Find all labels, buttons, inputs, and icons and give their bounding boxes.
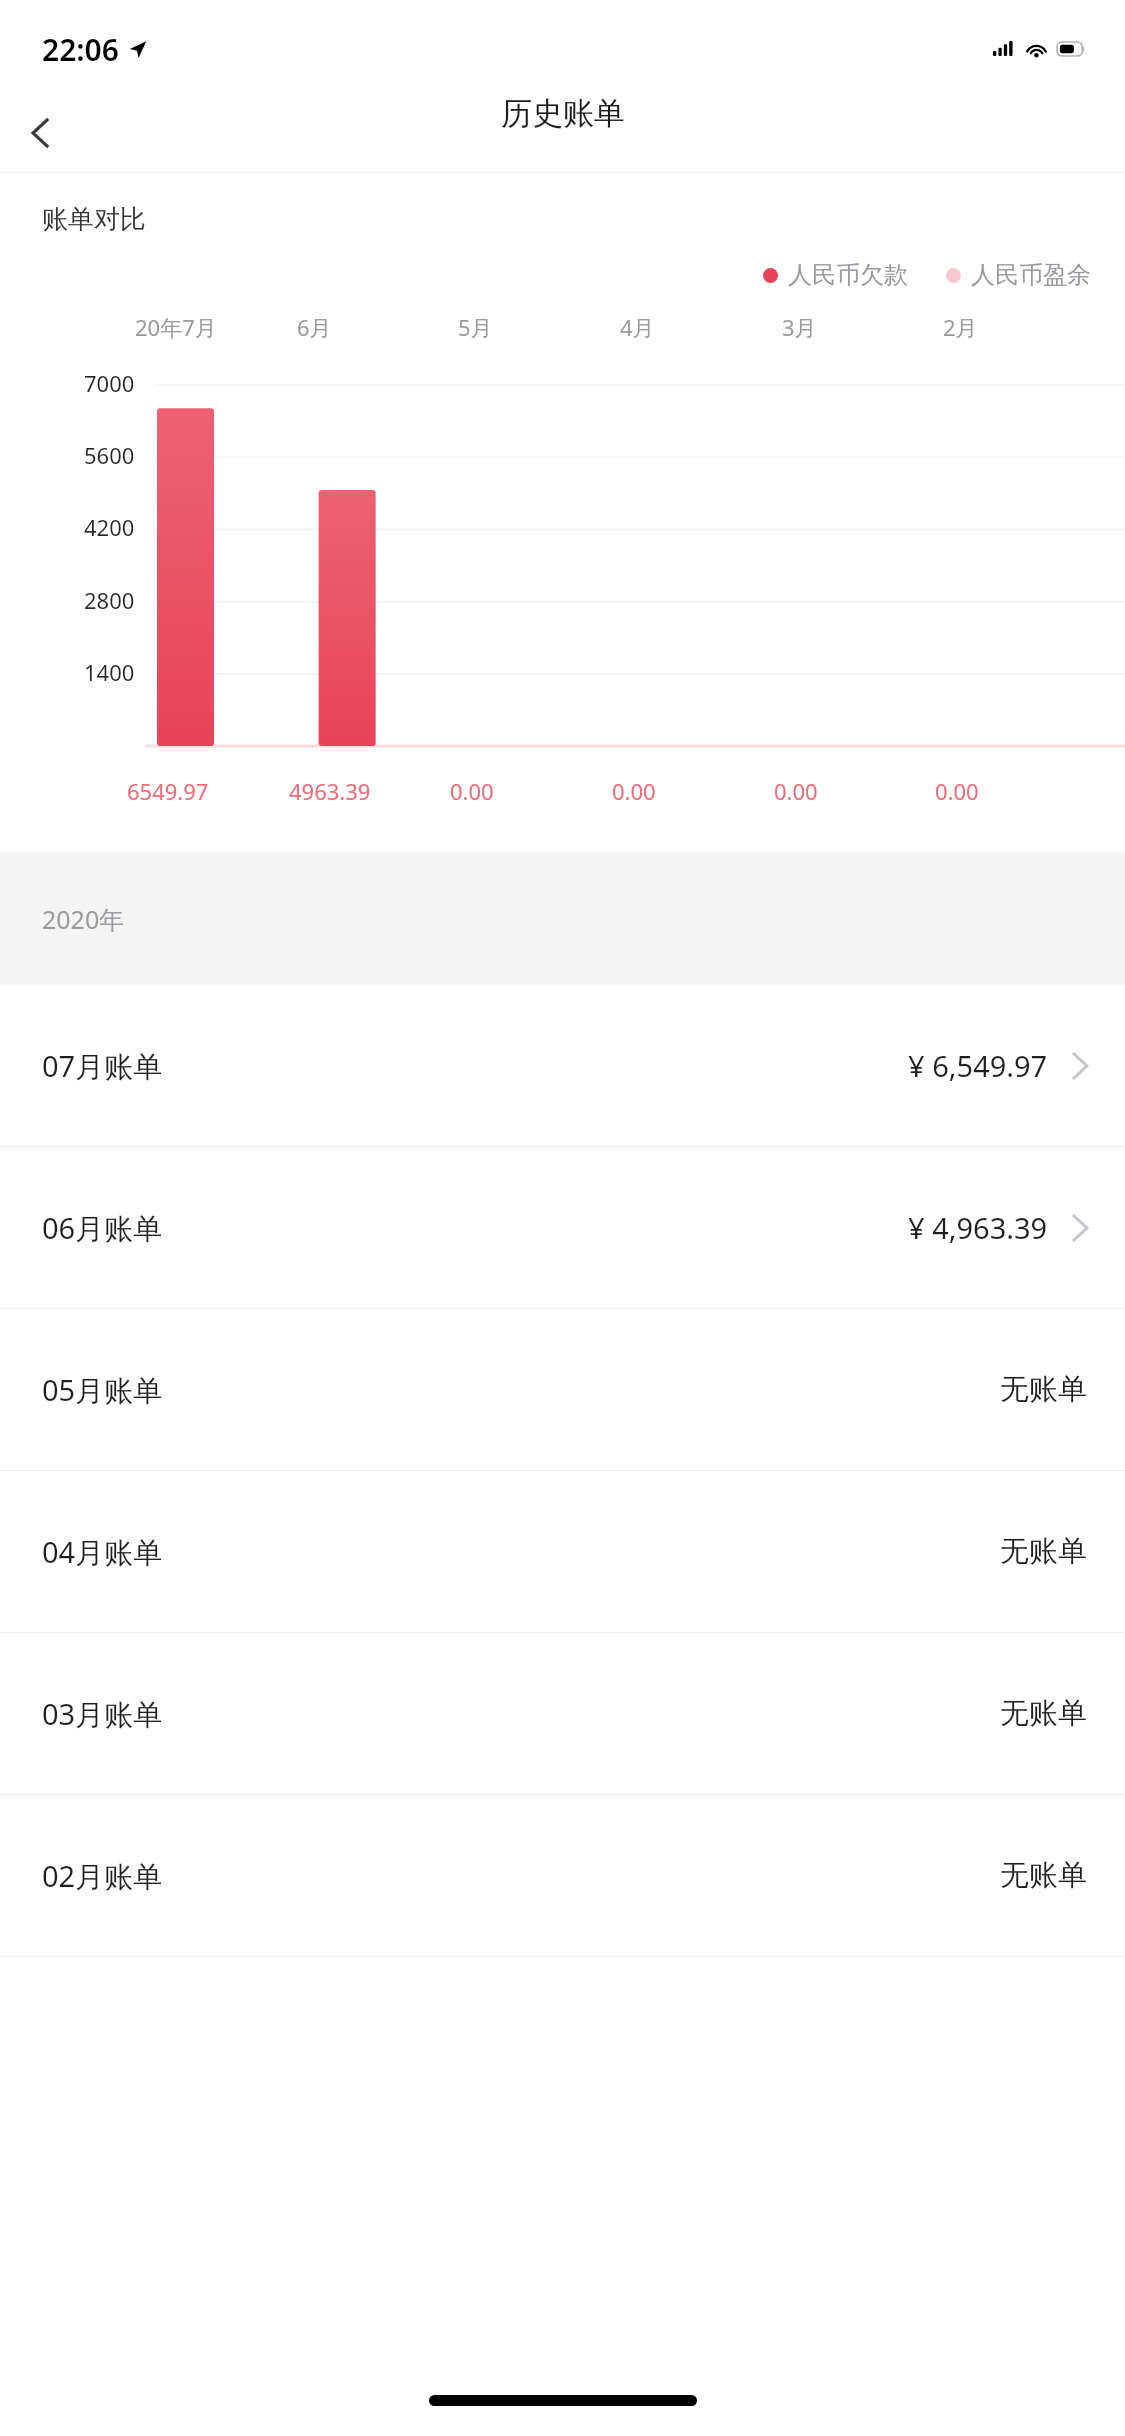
staticText: 无账单 [1000, 1533, 1087, 1570]
staticText: 04月账单 [42, 1532, 163, 1572]
staticText: 0.00 [935, 776, 979, 806]
staticText: ¥ 6,549.97 [908, 1046, 1048, 1085]
staticText: 0.00 [612, 776, 656, 806]
staticText: 05月账单 [42, 1370, 163, 1410]
button[interactable]: 05月账单 [0, 1309, 1125, 1470]
staticText: 7000 [84, 368, 135, 398]
button[interactable]: 02月账单 [0, 1795, 1125, 1956]
staticText: 5600 [84, 440, 135, 470]
staticText: 6月 [297, 312, 332, 342]
button[interactable]: 07月账单 [0, 985, 1125, 1146]
staticText: 2020年 [42, 902, 125, 936]
staticText: 5月 [458, 312, 493, 342]
button[interactable]: 03月账单 [0, 1633, 1125, 1794]
button[interactable]: Back [12, 105, 68, 161]
staticText: 07月账单 [42, 1046, 163, 1086]
button[interactable]: 04月账单 [0, 1471, 1125, 1632]
staticText: 无账单 [1000, 1371, 1087, 1408]
staticText: 4963.39 [289, 776, 371, 806]
staticText: ¥ 4,963.39 [908, 1208, 1048, 1247]
staticText: 无账单 [1000, 1857, 1087, 1894]
staticText: 0.00 [450, 776, 494, 806]
staticText: 22:06 [42, 29, 119, 70]
staticText: 4月 [620, 312, 655, 342]
staticText: 4200 [84, 512, 135, 542]
staticText: 0.00 [774, 776, 818, 806]
staticText: 20年7月 [135, 312, 217, 342]
staticText: 人民币盈余 [971, 260, 1091, 290]
button[interactable]: 06月账单 [0, 1147, 1125, 1308]
staticText: 02月账单 [42, 1856, 163, 1896]
staticText: 人民币欠款 [788, 260, 908, 290]
staticText: 03月账单 [42, 1694, 163, 1734]
staticText: 1400 [84, 657, 135, 687]
staticText: 历史账单 [501, 94, 625, 133]
staticText: 6549.97 [127, 776, 209, 806]
staticText: 2800 [84, 585, 135, 615]
staticText: 06月账单 [42, 1208, 163, 1248]
staticText: 3月 [782, 312, 817, 342]
staticText: 账单对比 [42, 203, 146, 236]
staticText: 无账单 [1000, 1695, 1087, 1732]
staticText: 2月 [943, 312, 978, 342]
